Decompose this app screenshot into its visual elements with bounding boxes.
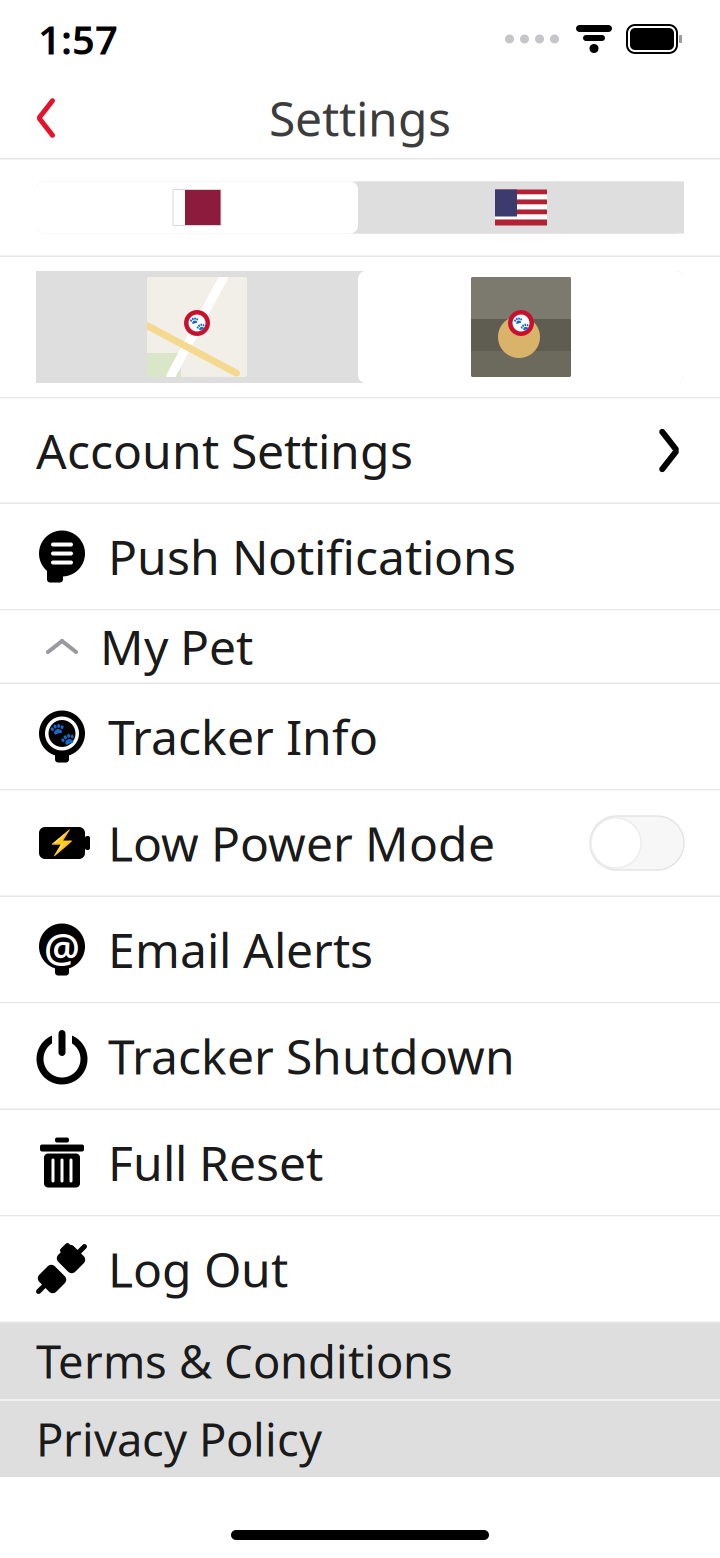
button[interactable]: Account Settings xyxy=(0,398,720,502)
staticText: Push Notifications xyxy=(108,525,516,588)
staticText: Low Power Mode xyxy=(108,811,495,875)
button[interactable]: My Pet xyxy=(0,610,720,682)
staticText: Terms & Conditions xyxy=(36,1331,453,1391)
staticText: Email Alerts xyxy=(108,918,373,981)
button[interactable]: Back xyxy=(8,80,84,156)
button[interactable]: Low Power Mode toggle xyxy=(590,816,684,870)
button[interactable]: Terms & Conditions xyxy=(0,1323,720,1399)
staticText: Settings xyxy=(269,86,451,150)
button[interactable]: Satellite map xyxy=(358,271,684,383)
button[interactable]: Privacy Policy xyxy=(0,1401,720,1477)
staticText: Account Settings xyxy=(36,419,413,482)
staticText: ⚡ xyxy=(47,829,77,857)
button[interactable]: Tracker Shutdown xyxy=(0,1003,720,1108)
staticText: Privacy Policy xyxy=(36,1409,322,1469)
staticText: Full Reset xyxy=(108,1131,323,1194)
button[interactable]: Standard map xyxy=(36,271,358,383)
button[interactable]: Arabic xyxy=(36,181,358,233)
staticText: 🐾 xyxy=(512,315,529,331)
staticText: Tracker Shutdown xyxy=(108,1024,515,1088)
button[interactable]: Log Out xyxy=(0,1216,720,1321)
button[interactable]: English xyxy=(358,181,684,233)
button[interactable]: Full Reset xyxy=(0,1110,720,1215)
staticText: 🐾 xyxy=(48,721,75,746)
staticText: My Pet xyxy=(100,615,253,678)
staticText: 1:57 xyxy=(38,12,118,65)
button[interactable]: ⚡ xyxy=(0,790,720,895)
button[interactable]: 🐾 xyxy=(0,684,720,789)
staticText: 🐾 xyxy=(188,315,205,331)
button[interactable]: Push Notifications xyxy=(0,504,720,609)
staticText: Tracker Info xyxy=(108,705,378,768)
staticText: @ xyxy=(44,920,80,973)
staticText: Log Out xyxy=(108,1237,288,1301)
button[interactable]: @ xyxy=(0,897,720,1002)
